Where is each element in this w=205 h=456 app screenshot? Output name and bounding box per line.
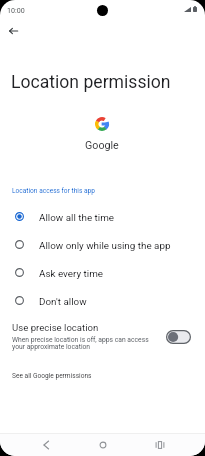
staticText: Ask every time (39, 268, 104, 280)
staticText: 10:00 (7, 6, 25, 14)
button[interactable]: Ask every time (0, 258, 205, 286)
button[interactable]: Use precise location (0, 318, 205, 352)
staticText: Use precise location (12, 322, 99, 333)
button[interactable]: Back (4, 22, 22, 40)
button[interactable]: Back (36, 434, 56, 456)
staticText: your approximate location (12, 343, 91, 351)
staticText: Allow only while using the app (39, 240, 171, 252)
staticText: Allow all the time (39, 212, 115, 224)
staticText: Don't allow (39, 296, 87, 308)
button[interactable]: Allow all the time (0, 202, 205, 230)
button[interactable]: See all Google permissions (12, 372, 92, 380)
staticText: Google (85, 139, 119, 152)
staticText: Location permission (11, 72, 171, 93)
staticText: Location access for this app (12, 187, 95, 195)
staticText: When precise location is off, apps can a… (12, 336, 149, 344)
button[interactable]: Don't allow (0, 286, 205, 314)
button[interactable]: Allow only while using the app (0, 230, 205, 258)
button[interactable]: Recent apps (150, 434, 170, 456)
button[interactable]: Home (93, 434, 113, 456)
